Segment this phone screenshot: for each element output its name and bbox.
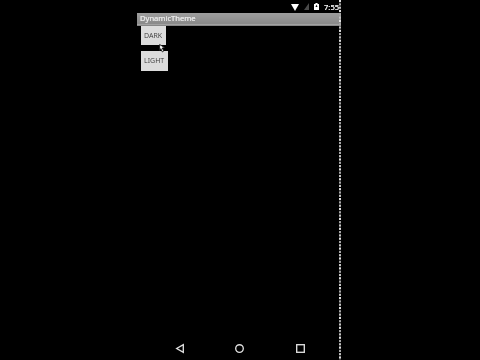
button[interactable]: DARK [141, 26, 166, 45]
button[interactable]: Back [170, 338, 190, 358]
staticText: DARK [144, 31, 163, 41]
staticText: LIGHT [144, 56, 165, 66]
button[interactable]: Home [230, 338, 250, 358]
button[interactable]: LIGHT [141, 51, 168, 71]
staticText: 7:55 [324, 2, 340, 12]
staticText: DynamicTheme [140, 13, 196, 23]
button[interactable]: Recents [290, 338, 310, 358]
